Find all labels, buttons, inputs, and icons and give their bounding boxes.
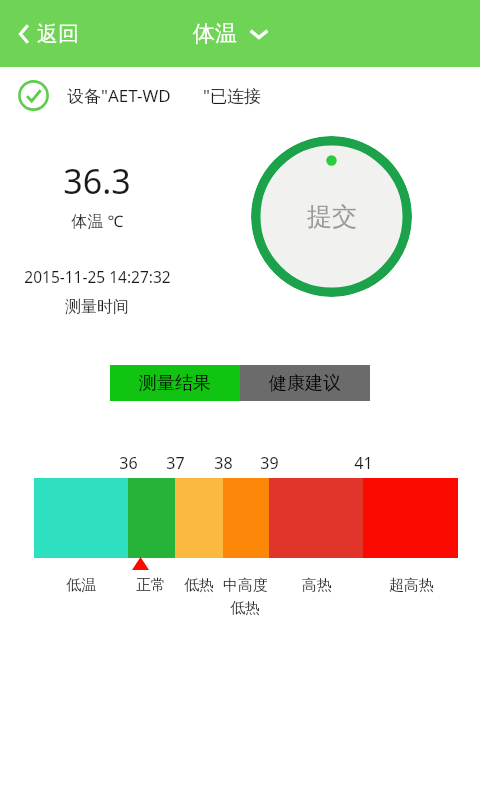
staticText: 37 — [166, 452, 185, 474]
staticText: 超高热 — [389, 576, 434, 595]
staticText: 中高度 — [223, 576, 268, 595]
staticText: 测量时间 — [65, 297, 129, 317]
staticText: 低热 — [184, 576, 214, 595]
staticText: 健康建议 — [269, 372, 341, 395]
staticText: 高热 — [302, 576, 332, 595]
staticText: 低热 — [230, 599, 260, 618]
staticText: 测量结果 — [139, 372, 211, 395]
staticText: 41 — [354, 452, 373, 474]
staticText: 36.3 — [63, 158, 131, 204]
staticText: 正常 — [136, 576, 166, 595]
staticText: 低温 — [66, 576, 96, 595]
button[interactable]: 测量结果 — [110, 365, 240, 401]
staticText: 体温 — [193, 20, 237, 48]
staticText: 设备"AET-WD — [67, 84, 171, 107]
staticText: 返回 — [37, 21, 79, 47]
staticText: 36 — [119, 452, 138, 474]
staticText: 提交 — [307, 201, 357, 232]
staticText: 2015-11-25 14:27:32 — [24, 266, 171, 287]
staticText: 38 — [214, 452, 233, 474]
staticText: "已连接 — [203, 84, 261, 107]
staticText: 39 — [260, 452, 279, 474]
button[interactable]: 体温 — [187, 16, 275, 52]
button[interactable]: 健康建议 — [240, 365, 370, 401]
staticText: 体温 ℃ — [71, 210, 124, 232]
button[interactable]: 提交 — [251, 136, 412, 297]
button[interactable]: 返回 — [14, 15, 83, 53]
button[interactable]: 设备"AET-WD — [0, 78, 480, 113]
